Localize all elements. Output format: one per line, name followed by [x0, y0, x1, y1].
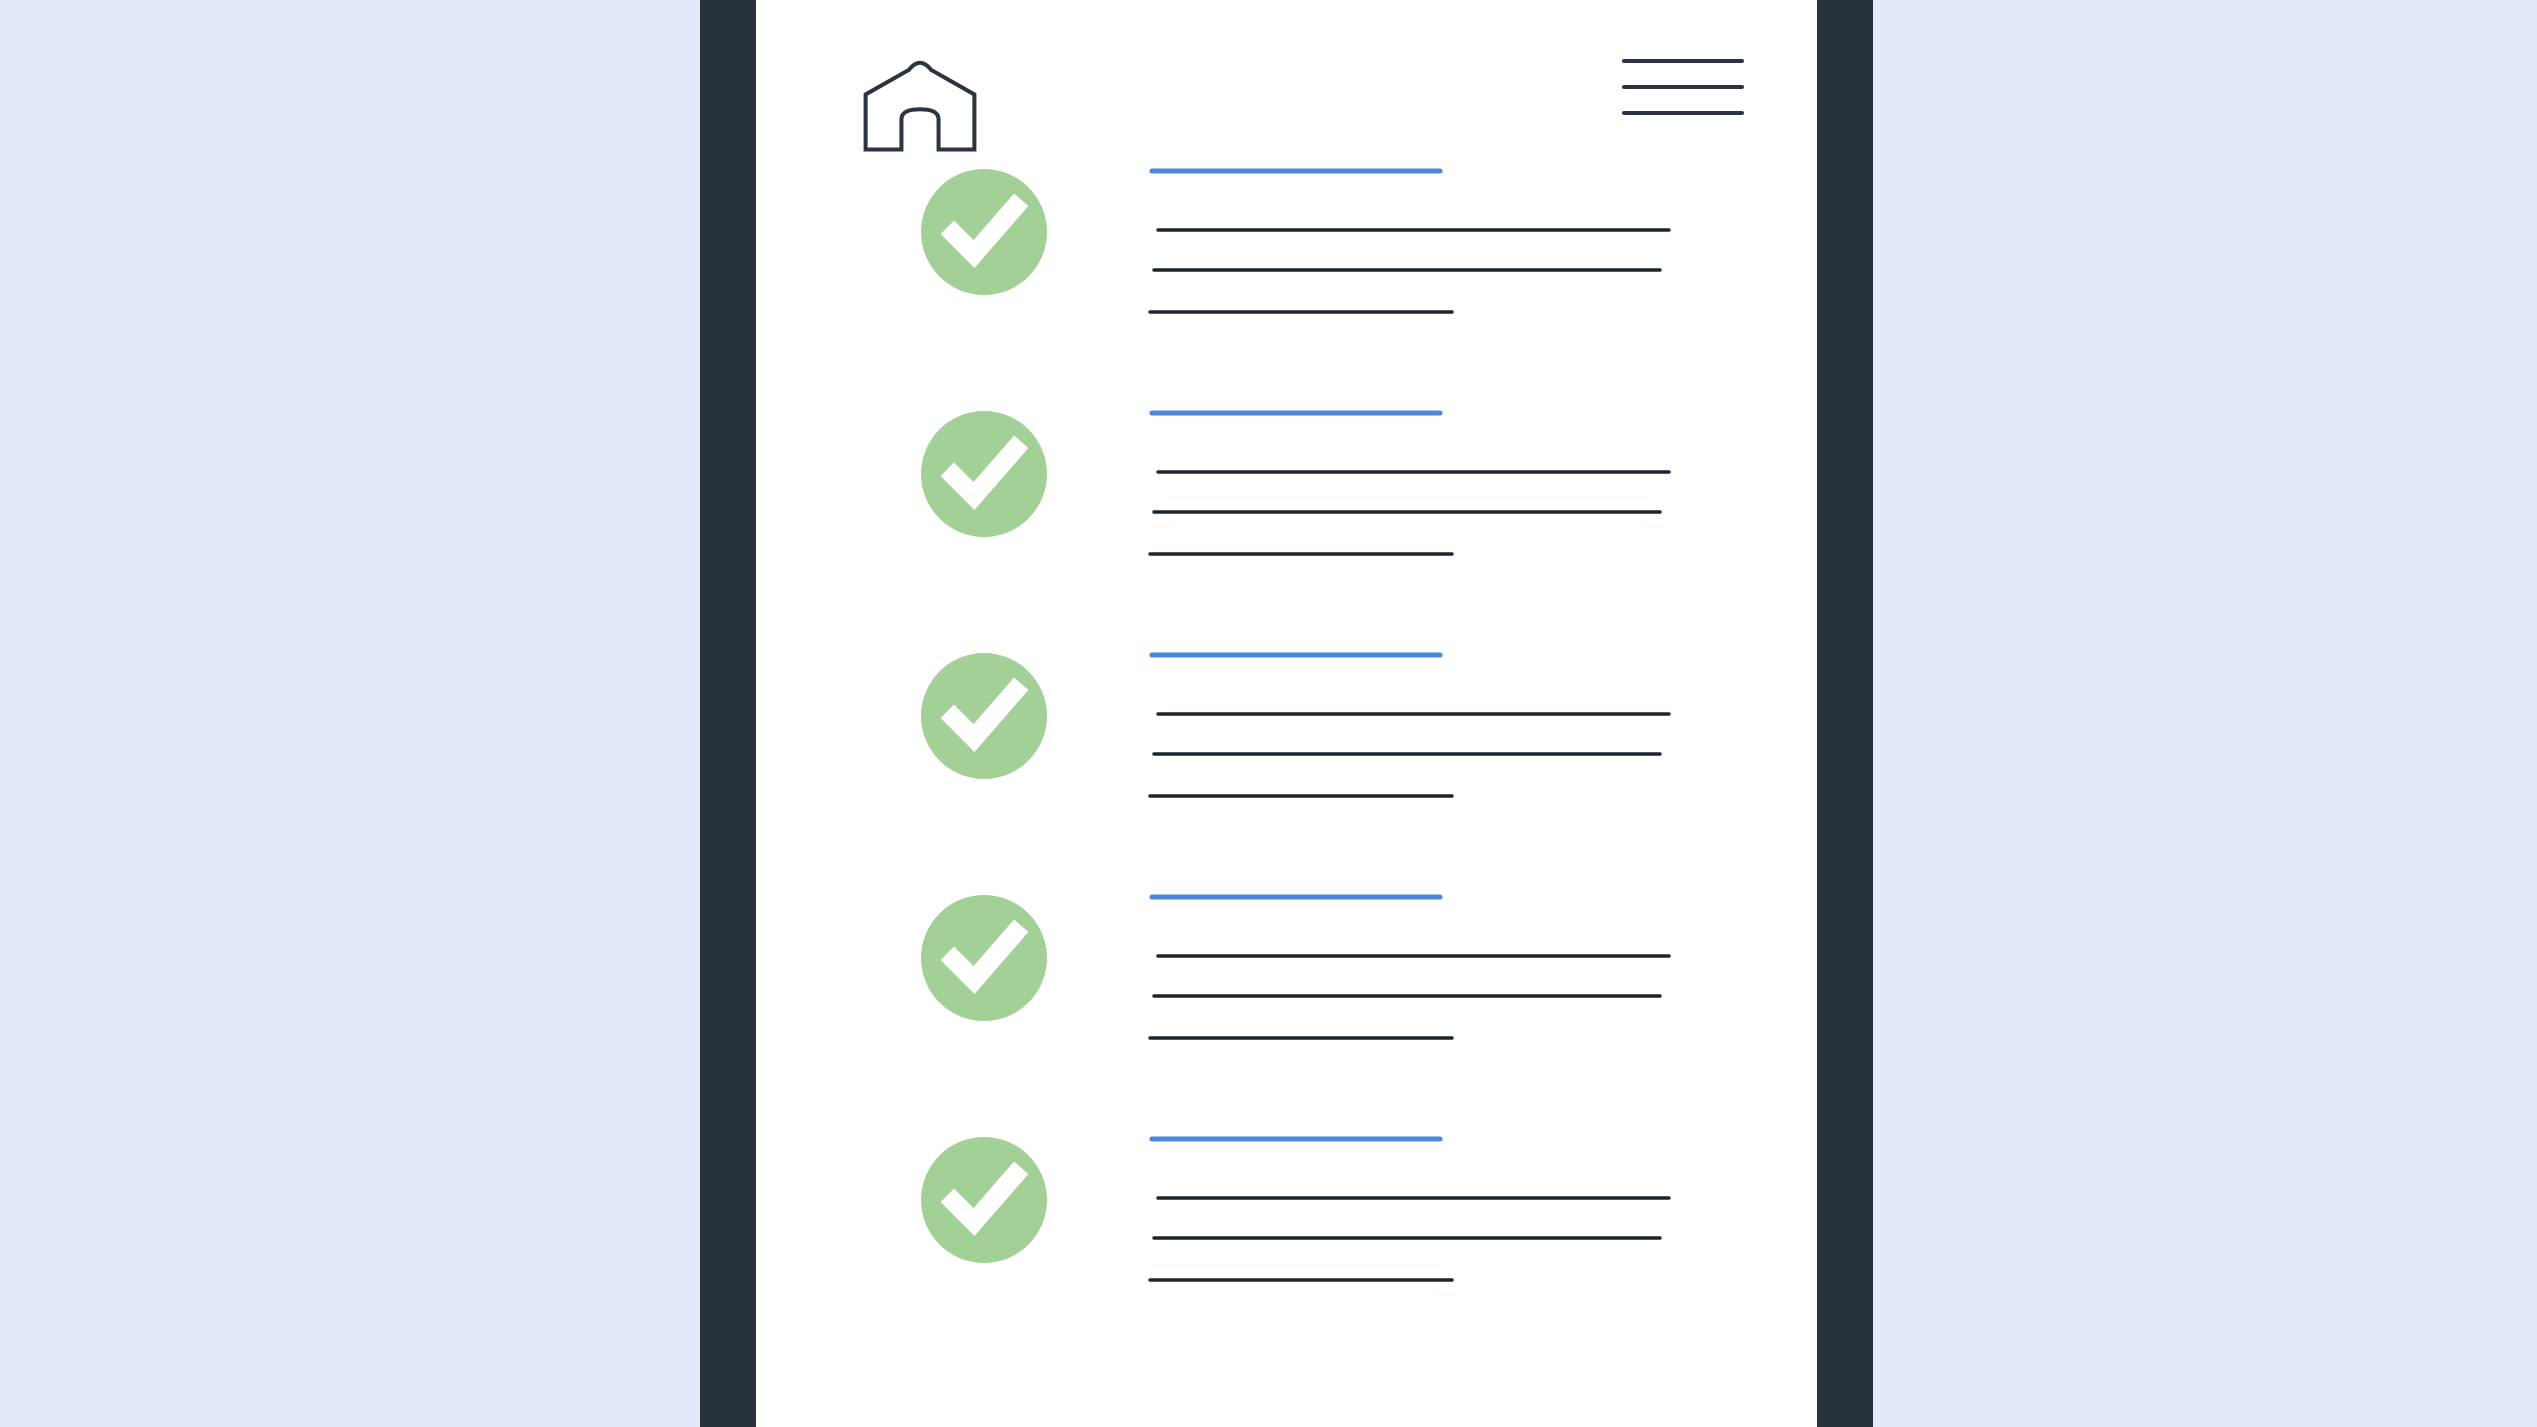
- button[interactable]: Menu: [1608, 40, 1748, 150]
- button[interactable]: [896, 412, 1776, 624]
- button[interactable]: [896, 170, 1776, 382]
- button[interactable]: [896, 896, 1776, 1108]
- button[interactable]: [896, 654, 1776, 866]
- button[interactable]: Home: [856, 38, 984, 162]
- button[interactable]: [896, 1138, 1776, 1350]
